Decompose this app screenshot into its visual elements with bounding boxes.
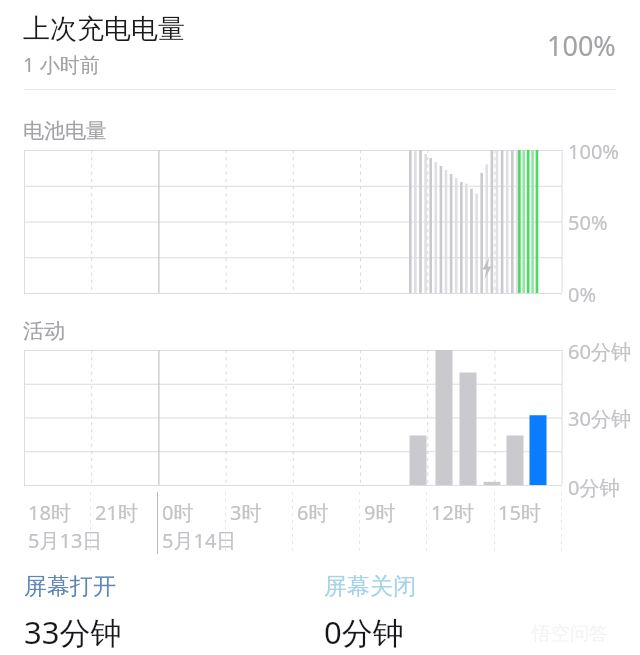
staticText: 60分钟 (568, 338, 631, 365)
button[interactable]: 屏幕打开 (20, 570, 126, 655)
staticText: 屏幕打开 (24, 572, 116, 601)
staticText: 33分钟 (24, 611, 122, 653)
staticText: 3时 (230, 499, 262, 526)
staticText: 50% (568, 209, 608, 236)
other: 活动图表 (0, 345, 640, 493)
staticText: 12时 (431, 499, 474, 526)
button[interactable]: 屏幕关闭 (320, 570, 420, 655)
staticText: 0% (568, 281, 597, 308)
button[interactable]: 上次充电电量 (0, 0, 640, 90)
staticText: 上次充电电量 (23, 12, 185, 46)
staticText: 9时 (364, 499, 396, 526)
staticText: 0时 (162, 499, 194, 526)
staticText: 5月14日 (162, 527, 237, 554)
staticText: 6时 (297, 499, 329, 526)
staticText: 100% (547, 27, 616, 64)
staticText: 1 小时前 (23, 51, 100, 78)
staticText: 0分钟 (568, 474, 620, 501)
staticText: 悟空问答 (532, 622, 608, 646)
staticText: 0分钟 (324, 611, 404, 653)
staticText: 活动 (23, 318, 65, 344)
staticText: 30分钟 (568, 405, 631, 432)
staticText: 电池电量 (23, 118, 107, 144)
staticText: 15时 (498, 499, 541, 526)
staticText: 屏幕关闭 (324, 572, 416, 601)
other: 电池电量图表 (0, 145, 640, 300)
staticText: 100% (568, 138, 619, 165)
staticText: 18时 (28, 499, 71, 526)
staticText: 21时 (95, 499, 138, 526)
staticText: 5月13日 (28, 527, 103, 554)
